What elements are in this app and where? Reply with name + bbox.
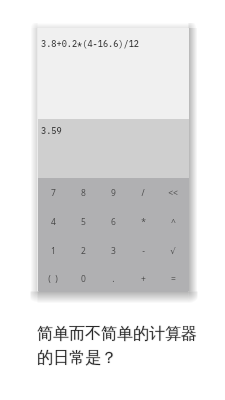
staticText: 4 — [51, 216, 56, 228]
button[interactable]: / — [128, 178, 158, 207]
staticText: 6 — [111, 216, 116, 228]
button[interactable]: << — [158, 178, 188, 207]
staticText: . — [112, 273, 115, 285]
staticText: 9 — [111, 187, 116, 199]
staticText: 3.59 — [41, 125, 62, 136]
staticText: 8 — [81, 187, 86, 199]
staticText: + — [141, 273, 146, 285]
button[interactable]: 4 — [38, 207, 68, 236]
button[interactable]: ( ) — [38, 265, 68, 292]
button[interactable]: - — [128, 236, 158, 265]
staticText: 0 — [81, 273, 86, 285]
staticText: = — [171, 273, 176, 285]
button[interactable]: = — [158, 265, 188, 292]
staticText: 简单而不简单的计算器 — [37, 324, 197, 344]
button[interactable]: 0 — [68, 265, 98, 292]
staticText: 5 — [81, 216, 86, 228]
button[interactable]: 3 — [98, 236, 128, 265]
staticText: 3 — [111, 245, 116, 257]
staticText: 的日常是？ — [37, 348, 117, 368]
button[interactable]: 1 — [38, 236, 68, 265]
button[interactable]: + — [128, 265, 158, 292]
staticText: 1 — [51, 245, 56, 257]
button[interactable]: * — [128, 207, 158, 236]
staticText: / — [141, 187, 145, 199]
button[interactable]: 7 — [38, 178, 68, 207]
staticText: ( ) — [48, 273, 58, 285]
staticText: - — [142, 245, 145, 257]
staticText: << — [168, 187, 178, 199]
staticText: ^ — [171, 216, 176, 228]
button[interactable]: ^ — [158, 207, 188, 236]
button[interactable]: 5 — [68, 207, 98, 236]
staticText: 2 — [81, 245, 86, 257]
staticText: * — [141, 216, 146, 228]
button[interactable]: 6 — [98, 207, 128, 236]
button[interactable]: 8 — [68, 178, 98, 207]
button[interactable]: √ — [158, 236, 188, 265]
staticText: 7 — [51, 187, 56, 199]
staticText: 3.8+0.2*(4-16.6)/12 — [41, 38, 139, 49]
button[interactable]: 9 — [98, 178, 128, 207]
staticText: √ — [170, 246, 176, 256]
button[interactable]: 2 — [68, 236, 98, 265]
